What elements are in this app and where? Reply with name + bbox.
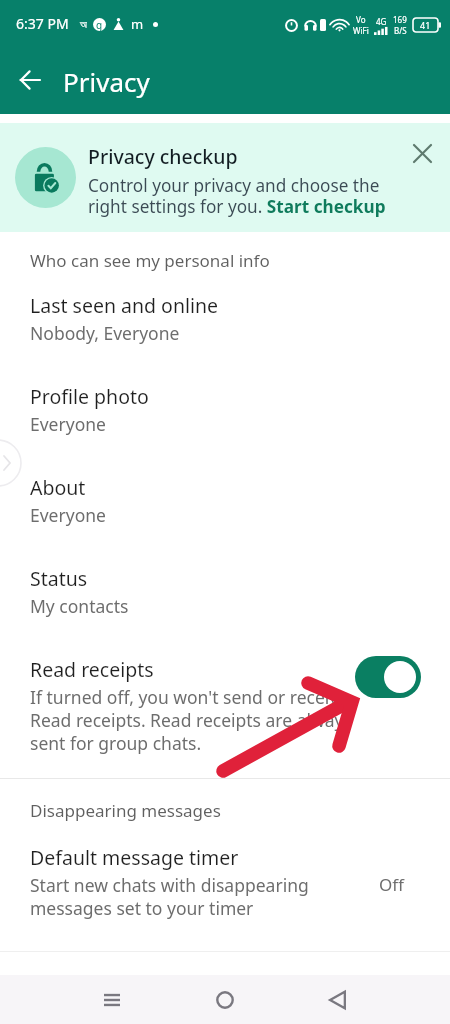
staticText: 41: [420, 19, 431, 31]
staticText: B/S: [394, 25, 407, 36]
staticText: Off: [379, 873, 404, 896]
staticText: If turned off, you won't send or receive…: [30, 685, 358, 755]
staticText: Disappearing messages: [30, 799, 221, 822]
button[interactable]: Back: [6, 56, 54, 104]
staticText: Privacy: [63, 64, 150, 99]
button[interactable]: Profile photo: [0, 345, 450, 436]
staticText: Status: [30, 565, 88, 592]
button[interactable]: Status: [0, 527, 450, 618]
staticText: 4G: [376, 16, 387, 27]
staticText: About: [30, 474, 86, 501]
staticText: Start new chats with disappearing messag…: [30, 873, 369, 920]
button[interactable]: Last seen and online: [0, 272, 450, 345]
button[interactable]: Back: [281, 975, 394, 1024]
button[interactable]: Read receipts: [0, 618, 450, 755]
staticText: Control your privacy and choose the righ…: [88, 174, 400, 219]
staticText: অ: [80, 19, 87, 30]
staticText: Everyone: [30, 412, 106, 436]
staticText: Read receipts: [30, 656, 154, 683]
button[interactable]: Privacy checkup: [0, 123, 450, 232]
staticText: Profile photo: [30, 383, 149, 410]
staticText: Default message timer: [30, 844, 239, 871]
staticText: 6:37 PM: [16, 14, 69, 33]
button[interactable]: Close: [403, 134, 441, 172]
button[interactable]: Recents: [56, 975, 168, 1024]
staticText: Nobody, Everyone: [30, 321, 180, 345]
staticText: Who can see my personal info: [30, 249, 270, 272]
staticText: My contacts: [30, 594, 129, 618]
staticText: Vo: [356, 14, 366, 25]
staticText: m: [131, 15, 144, 33]
staticText: WiFi: [353, 25, 369, 36]
button[interactable]: About: [0, 436, 450, 527]
staticText: Privacy checkup: [88, 143, 238, 170]
button[interactable]: Default message timer: [0, 822, 450, 920]
button[interactable]: Read receipts toggle: [355, 656, 421, 698]
staticText: g: [96, 18, 103, 31]
staticText: 169: [393, 14, 407, 25]
staticText: Last seen and online: [30, 292, 219, 319]
button[interactable]: Home: [168, 975, 281, 1024]
staticText: Everyone: [30, 503, 106, 527]
